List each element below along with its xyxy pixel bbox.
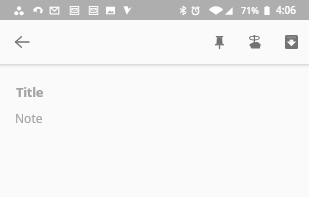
staticText: 4:06 xyxy=(276,3,296,17)
staticText: Title xyxy=(16,83,44,101)
staticText: Note xyxy=(15,110,43,126)
button[interactable]: Archive xyxy=(274,20,308,64)
staticText: 71% xyxy=(241,4,259,16)
button[interactable]: Reminder xyxy=(238,20,272,64)
button[interactable]: Navigate up xyxy=(3,20,41,64)
button[interactable]: Pin note xyxy=(202,20,236,64)
